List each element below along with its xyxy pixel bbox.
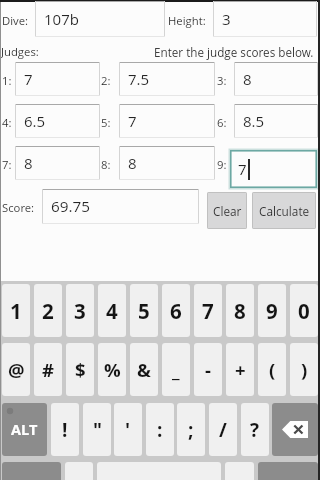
staticText: 8 xyxy=(243,69,252,89)
button[interactable]: 7 xyxy=(194,284,222,337)
button[interactable]: 4 xyxy=(98,284,126,337)
staticText: 6: xyxy=(217,115,227,130)
button[interactable]: 8 xyxy=(15,146,100,180)
button[interactable]: ; xyxy=(177,403,205,456)
staticText: ) xyxy=(301,357,308,382)
staticText: 9: xyxy=(217,157,227,172)
staticText: 7 xyxy=(128,111,137,131)
button[interactable]: 0 xyxy=(290,284,318,337)
button[interactable]: & xyxy=(130,343,158,396)
staticText: ' xyxy=(125,417,131,443)
staticText: 8 xyxy=(128,153,137,173)
staticText: $ xyxy=(75,357,86,382)
staticText: " xyxy=(93,417,102,443)
button[interactable]: 107b xyxy=(35,1,165,37)
button[interactable]: Delete xyxy=(272,403,318,456)
staticText: 1: xyxy=(2,73,12,88)
button[interactable]: 2 xyxy=(34,284,62,337)
staticText: Calculate xyxy=(259,203,310,219)
staticText: 2 xyxy=(42,297,54,325)
staticText: 3 xyxy=(74,297,86,325)
staticText: 3: xyxy=(217,73,227,88)
staticText: Dive: xyxy=(2,13,29,28)
staticText: ? xyxy=(250,417,260,443)
staticText: ! xyxy=(62,417,68,443)
button[interactable]: 7 xyxy=(230,150,317,188)
staticText: 5: xyxy=(101,115,111,130)
button[interactable]: 6 xyxy=(162,284,190,337)
button[interactable]: 8.5 xyxy=(234,104,318,138)
button[interactable]: 8 xyxy=(119,146,215,180)
button[interactable]: Clear xyxy=(207,192,247,229)
button[interactable]: 8 xyxy=(234,62,318,96)
button[interactable]: 7 xyxy=(15,62,100,96)
button[interactable]: $ xyxy=(66,343,94,396)
button[interactable]: 5 xyxy=(130,284,158,337)
staticText: 7 xyxy=(202,297,214,325)
staticText: ( xyxy=(269,357,276,382)
staticText: 6 xyxy=(170,297,182,325)
staticText: 3 xyxy=(222,9,231,29)
button[interactable]: Alt xyxy=(2,403,47,456)
button[interactable]: + xyxy=(226,343,254,396)
button[interactable]: 7.5 xyxy=(119,62,215,96)
staticText: % xyxy=(104,357,121,382)
button[interactable]: : xyxy=(146,403,174,456)
staticText: 6.5 xyxy=(24,111,46,131)
staticText: 8: xyxy=(101,157,111,172)
button[interactable]: _ xyxy=(162,343,190,396)
button[interactable]: 3 xyxy=(213,1,317,37)
button[interactable]: Calculate xyxy=(252,192,316,229)
button[interactable]: - xyxy=(194,343,222,396)
staticText: 8.5 xyxy=(243,111,265,131)
button[interactable]: 8 xyxy=(226,284,254,337)
staticText: ; xyxy=(188,417,194,443)
staticText: + xyxy=(235,357,246,382)
staticText: Clear xyxy=(213,203,242,219)
button[interactable]: 9 xyxy=(258,284,286,337)
button[interactable]: 3 xyxy=(66,284,94,337)
staticText: 107b xyxy=(44,9,79,29)
staticText: 9 xyxy=(266,297,278,325)
staticText: 8 xyxy=(24,153,33,173)
button[interactable]: @ xyxy=(2,343,30,396)
staticText: 7 xyxy=(238,159,247,179)
button[interactable]: 6.5 xyxy=(15,104,100,138)
button[interactable]: / xyxy=(209,403,237,456)
staticText: # xyxy=(42,357,54,382)
button[interactable]: 69.75 xyxy=(42,189,199,224)
button[interactable]: ? xyxy=(241,403,269,456)
button[interactable]: ! xyxy=(51,403,79,456)
button[interactable]: 1 xyxy=(2,284,30,337)
staticText: 7.5 xyxy=(128,69,150,89)
button[interactable]: ) xyxy=(290,343,318,396)
staticText: _ xyxy=(172,357,180,382)
staticText: / xyxy=(219,417,227,443)
button[interactable]: % xyxy=(98,343,126,396)
button[interactable]: ( xyxy=(258,343,286,396)
button[interactable]: 7 xyxy=(119,104,215,138)
staticText: 7: xyxy=(2,157,12,172)
staticText: 0 xyxy=(298,297,310,325)
staticText: & xyxy=(137,357,151,382)
staticText: ALT xyxy=(11,420,38,440)
staticText: @ xyxy=(8,357,25,382)
staticText: 1 xyxy=(10,297,22,325)
button[interactable]: # xyxy=(34,343,62,396)
staticText: Height: xyxy=(168,13,206,28)
staticText: 7 xyxy=(24,69,33,89)
button[interactable]: " xyxy=(83,403,111,456)
button[interactable]: ' xyxy=(114,403,142,456)
staticText: Score: xyxy=(2,200,35,215)
staticText: 5 xyxy=(138,297,150,325)
staticText: Enter the judge scores below. xyxy=(154,44,314,60)
staticText: : xyxy=(157,417,163,443)
